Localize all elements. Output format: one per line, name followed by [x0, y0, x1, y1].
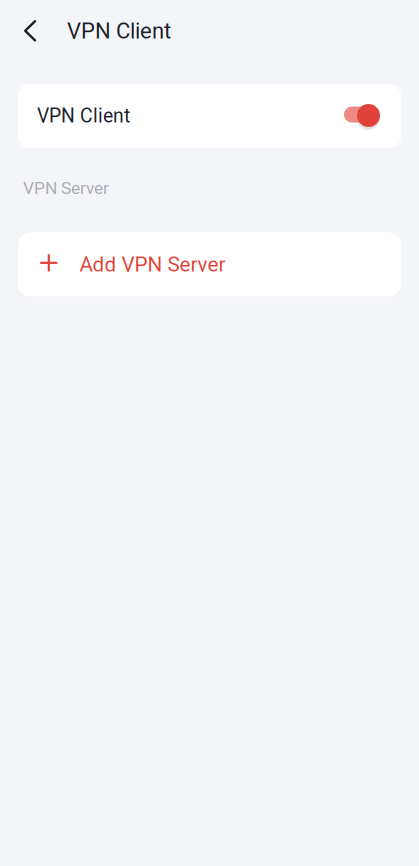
staticText: VPN Client — [37, 105, 130, 127]
staticText: VPN Server — [23, 178, 109, 198]
button[interactable]: Add VPN Server — [18, 232, 401, 296]
staticText: Add VPN Server — [80, 252, 226, 276]
staticText: VPN Client — [67, 18, 171, 44]
button[interactable]: Back — [12, 9, 48, 53]
button[interactable]: VPN Client — [18, 84, 401, 148]
